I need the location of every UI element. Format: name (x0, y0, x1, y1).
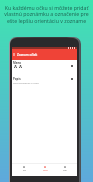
button[interactable]: Očká (36, 164, 54, 176)
button[interactable]: Menu (12, 49, 77, 60)
staticText: Zoznam očiek (17, 53, 38, 57)
button[interactable]: Popis (12, 77, 77, 91)
button[interactable]: Kalendár (15, 164, 33, 176)
staticText: Popis (13, 77, 21, 81)
staticText: Ku každému očku si môžete pridať vlastnú… (3, 4, 90, 25)
button[interactable]: Nastavenia (56, 164, 74, 176)
staticText: Očká (43, 169, 48, 172)
staticText: Kal (23, 169, 26, 172)
staticText: Viac (63, 169, 67, 172)
staticText: Meno (13, 61, 22, 65)
button[interactable]: Meno (12, 60, 77, 76)
staticText: Text poznámky k očku (13, 81, 39, 84)
